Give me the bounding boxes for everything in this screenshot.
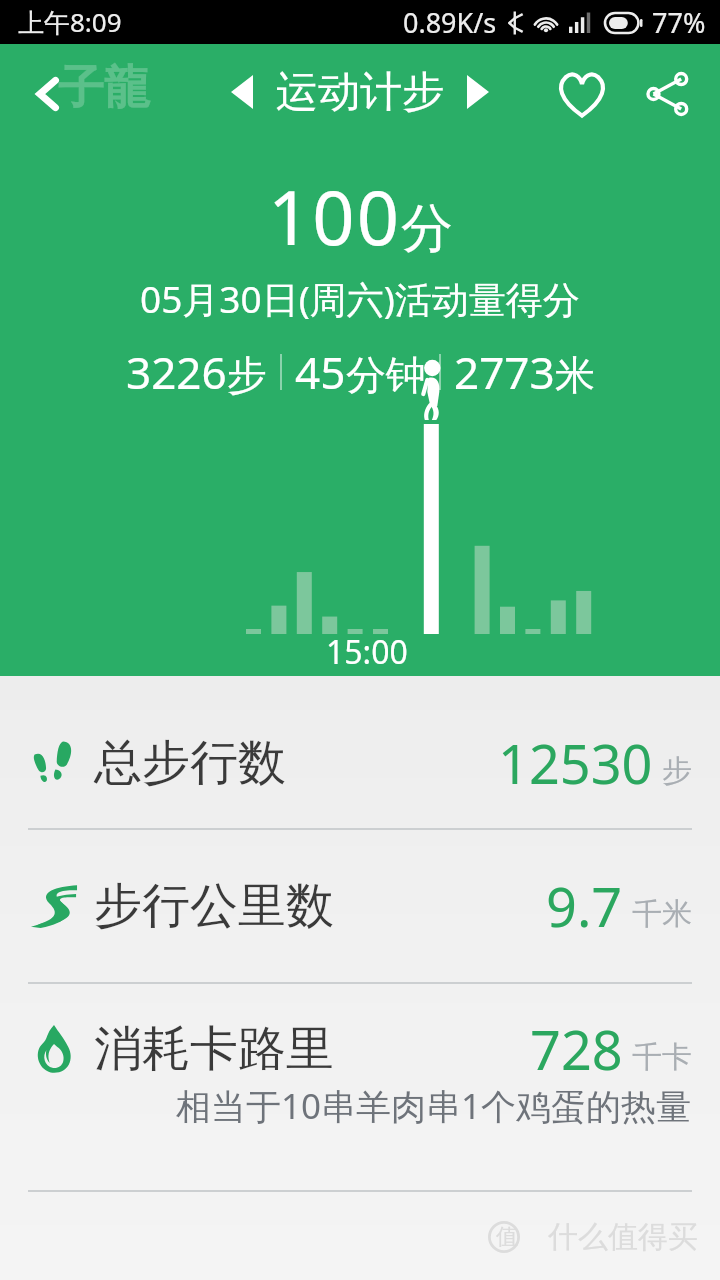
staticText: 步 <box>227 350 267 400</box>
staticText: 77% <box>652 4 706 41</box>
button[interactable]: 总步行数 <box>0 698 720 828</box>
staticText: 什么值得买 <box>548 1218 698 1256</box>
staticText: 相当于10串羊肉串1个鸡蛋的热量 <box>176 1082 692 1130</box>
staticText: 步 <box>662 752 692 790</box>
staticText: 2773 <box>454 342 555 402</box>
staticText: 12530 <box>498 726 653 800</box>
staticText: 9.7 <box>546 869 623 943</box>
staticText: 15:00 <box>326 630 408 674</box>
button[interactable]: Back <box>14 60 82 128</box>
staticText: 45 <box>295 342 346 402</box>
staticText: 消耗卡路里 <box>94 1019 334 1079</box>
staticText: 3226 <box>126 342 227 402</box>
button[interactable]: Favorite <box>546 58 618 130</box>
staticText: 05月30日(周六)活动量得分 <box>140 273 580 324</box>
staticText: 子龍 <box>58 59 150 117</box>
button[interactable]: Next day <box>450 64 506 120</box>
staticText: 米 <box>555 350 595 400</box>
staticText: 728 <box>530 1012 623 1086</box>
button[interactable]: Share <box>634 60 702 128</box>
staticText: 分 <box>401 196 453 262</box>
staticText: 总步行数 <box>94 733 286 793</box>
staticText: 100 <box>268 166 401 267</box>
staticText: 千米 <box>632 895 692 933</box>
button[interactable]: Previous day <box>214 64 270 120</box>
staticText: 运动计步 <box>276 66 444 119</box>
staticText: 分钟 <box>346 350 426 400</box>
staticText: 0.89K/s <box>403 4 497 41</box>
staticText: 步行公里数 <box>94 876 334 936</box>
button[interactable]: 步行公里数 <box>0 830 720 982</box>
staticText: 千卡 <box>632 1038 692 1076</box>
staticText: 上午8:09 <box>18 4 122 40</box>
button[interactable]: 消耗卡路里 <box>0 1012 720 1086</box>
staticText: 值 <box>496 1223 518 1251</box>
